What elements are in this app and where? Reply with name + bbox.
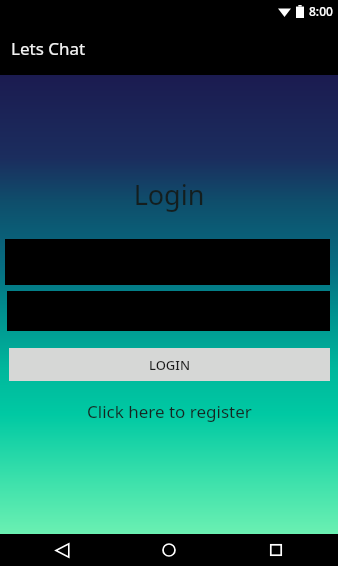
staticText: 8:00	[309, 3, 333, 19]
button[interactable]: Click here to register	[0, 400, 338, 423]
staticText: Lets Chat	[11, 37, 86, 60]
staticText: LOGIN	[149, 356, 191, 374]
staticText: Login	[0, 176, 338, 213]
button[interactable]: LOGIN	[9, 348, 330, 381]
staticText: Click here to register	[87, 400, 252, 423]
button[interactable]: Home	[112, 534, 225, 566]
button[interactable]: Recent apps	[225, 534, 338, 566]
button[interactable]: Back	[0, 534, 112, 566]
